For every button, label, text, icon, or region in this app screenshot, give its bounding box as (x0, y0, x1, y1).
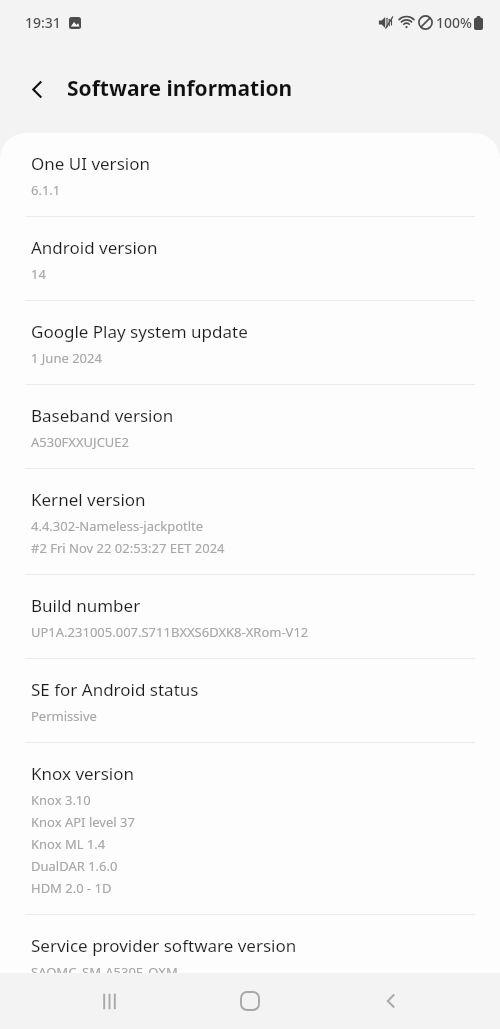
staticText: Software information (67, 74, 293, 103)
button[interactable]: Knox version (0, 743, 500, 914)
button[interactable]: Baseband version (0, 385, 500, 468)
staticText: A530FXXUJCUE2 (31, 433, 130, 451)
staticText: HDM 2.0 - 1D (31, 879, 112, 897)
button[interactable]: Kernel version (0, 469, 500, 574)
staticText: 6.1.1 (31, 181, 61, 199)
staticText: 100% (436, 13, 472, 32)
staticText: Knox version (31, 762, 134, 785)
staticText: #2 Fri Nov 22 02:53:27 EET 2024 (31, 539, 225, 557)
staticText: 1 June 2024 (31, 349, 102, 367)
staticText: One UI version (31, 152, 150, 175)
staticText: Kernel version (31, 488, 146, 511)
button[interactable]: Service provider software version (0, 915, 500, 973)
staticText: SAOMC_SM-A530F_OXM (31, 963, 178, 973)
button[interactable]: Back (359, 973, 423, 1029)
staticText: Knox API level 37 (31, 813, 135, 831)
staticText: SE for Android status (31, 678, 199, 701)
staticText: Google Play system update (31, 320, 248, 343)
staticText: 14 (31, 265, 46, 283)
button[interactable]: SE for Android status (0, 659, 500, 742)
staticText: Permissive (31, 707, 97, 725)
button[interactable]: Recent apps (77, 973, 141, 1029)
button[interactable]: One UI version (0, 133, 500, 216)
staticText: DualDAR 1.6.0 (31, 857, 118, 875)
staticText: Knox ML 1.4 (31, 835, 106, 853)
button[interactable]: Back (15, 67, 59, 111)
button[interactable]: Google Play system update (0, 301, 500, 384)
button[interactable]: Build number (0, 575, 500, 658)
button[interactable]: Home (218, 973, 282, 1029)
staticText: UP1A.231005.007.S711BXXS6DXK8-XRom-V12 (31, 623, 309, 641)
staticText: 4.4.302-Nameless-jackpotlte (31, 517, 204, 535)
staticText: Knox 3.10 (31, 791, 91, 809)
staticText: Build number (31, 594, 141, 617)
staticText: Service provider software version (31, 934, 297, 957)
staticText: 19:31 (25, 13, 61, 32)
staticText: Android version (31, 236, 158, 259)
staticText: Baseband version (31, 404, 174, 427)
button[interactable]: Android version (0, 217, 500, 300)
